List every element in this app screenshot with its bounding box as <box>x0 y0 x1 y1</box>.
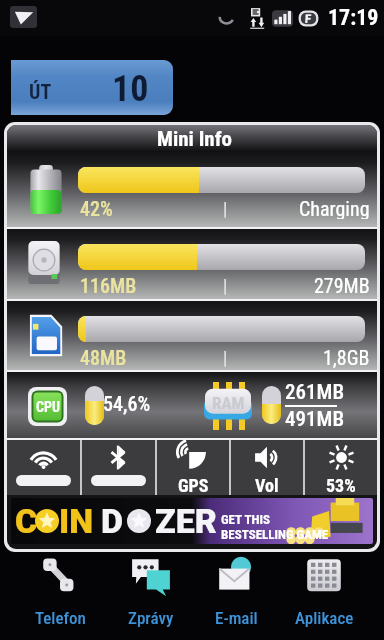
staticText: ZER <box>155 501 217 541</box>
button[interactable]: 48MB <box>7 301 377 370</box>
button[interactable]: CPU <box>28 387 67 426</box>
button[interactable]: Volume <box>231 440 303 495</box>
staticText: 1,8GB <box>323 346 370 368</box>
button[interactable]: 116MB <box>7 229 377 299</box>
staticText: 491MB <box>285 407 345 432</box>
button[interactable]: Aplikace <box>286 552 362 638</box>
button[interactable]: E-mail <box>198 552 274 638</box>
staticText: 42% <box>80 197 113 219</box>
staticText: 10 <box>112 68 149 110</box>
staticText: 48MB <box>80 346 127 368</box>
staticText: 54,6% <box>103 392 151 415</box>
staticText: BESTSELLING GAME <box>221 527 329 542</box>
staticText: E-mail <box>215 608 258 628</box>
staticText: 261MB <box>285 380 345 405</box>
staticText: 53% <box>326 475 356 495</box>
button[interactable]: Zprávy <box>113 552 189 638</box>
button[interactable]: Coin Dozer advertisement <box>11 498 373 544</box>
button[interactable]: GPS <box>157 440 229 495</box>
button[interactable]: ÚT <box>11 60 173 115</box>
staticText: Mini Info <box>157 127 233 152</box>
staticText: GET THIS <box>221 512 270 527</box>
staticText: Zprávy <box>128 608 174 628</box>
staticText: | <box>223 275 228 296</box>
button[interactable]: 42% <box>7 152 377 227</box>
staticText: Telefon <box>35 608 86 628</box>
other: Notification <box>10 6 37 28</box>
staticText: CPU <box>36 399 60 415</box>
staticText: 279MB <box>314 274 370 296</box>
button[interactable]: Telefon <box>22 552 98 638</box>
button[interactable]: Bluetooth <box>82 440 155 495</box>
staticText: RAM <box>212 393 245 413</box>
staticText: D <box>101 501 123 541</box>
button[interactable]: Wi-Fi <box>7 440 80 495</box>
staticText: 116MB <box>80 274 137 296</box>
staticText: Charging <box>299 197 370 219</box>
staticText: C <box>15 501 38 541</box>
staticText: GPS <box>178 475 209 495</box>
staticText: Vol <box>255 475 279 495</box>
staticText: 17:19 <box>328 5 379 31</box>
staticText: ÚT <box>29 80 52 103</box>
button[interactable]: Brightness <box>305 440 377 495</box>
staticText: IN <box>59 501 94 541</box>
staticText: Aplikace <box>295 608 354 628</box>
staticText: | <box>223 347 228 368</box>
button[interactable]: RAM <box>203 382 253 430</box>
staticText: | <box>223 198 228 219</box>
